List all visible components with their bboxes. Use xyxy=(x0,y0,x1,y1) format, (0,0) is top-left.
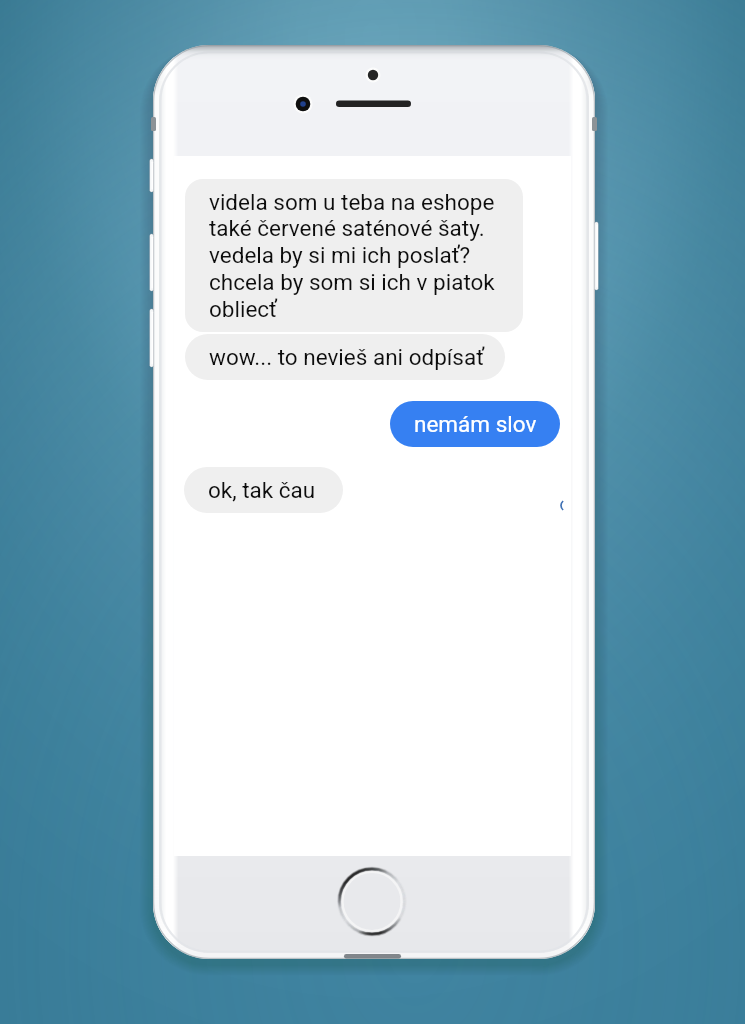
button[interactable]: videla som u teba na eshope také červené… xyxy=(185,179,523,332)
staticText: wow... to nevieš ani odpísať xyxy=(209,344,485,370)
button[interactable]: ok, tak čau xyxy=(184,467,343,513)
button[interactable]: nemám slov xyxy=(390,401,560,447)
button[interactable]: Home xyxy=(338,867,406,935)
button[interactable]: wow... to nevieš ani odpísať xyxy=(185,334,505,380)
staticText: nemám slov xyxy=(414,411,537,437)
staticText: videla som u teba na eshope také červené… xyxy=(209,189,511,323)
staticText: ok, tak čau xyxy=(208,477,316,503)
